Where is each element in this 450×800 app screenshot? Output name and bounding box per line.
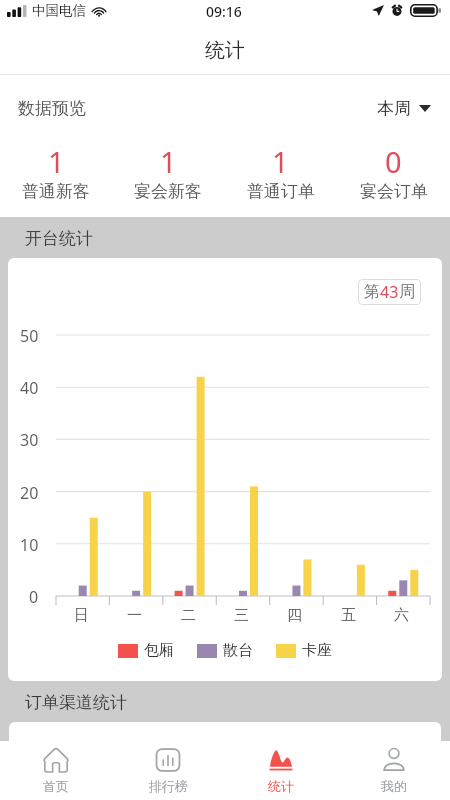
button[interactable]: 1 <box>112 141 224 202</box>
staticText: 第 <box>364 282 380 302</box>
staticText: 卡座 <box>302 641 332 660</box>
staticText: 43 <box>380 281 399 303</box>
staticText: 40 <box>20 377 39 399</box>
staticText: 1 <box>160 142 177 181</box>
button[interactable]: 1 <box>224 141 337 202</box>
staticText: 1 <box>48 142 65 181</box>
button[interactable]: 第 <box>358 279 421 305</box>
staticText: 统计 <box>205 38 245 63</box>
button[interactable]: 我的 <box>337 741 450 798</box>
staticText: 排行榜 <box>149 778 188 794</box>
staticText: 二 <box>181 606 196 625</box>
staticText: 开台统计 <box>25 228 93 249</box>
button[interactable]: 排行榜 <box>112 741 224 798</box>
other: 排行榜 <box>154 746 182 774</box>
staticText: 六 <box>394 606 409 625</box>
staticText: 普通订单 <box>247 181 315 202</box>
other: 我的 <box>380 746 408 774</box>
staticText: 宴会新客 <box>134 181 202 202</box>
staticText: 0 <box>385 142 402 181</box>
staticText: 我的 <box>381 778 407 794</box>
button[interactable]: 统计 <box>224 741 337 798</box>
staticText: 20 <box>20 482 39 504</box>
staticText: 周 <box>399 282 415 302</box>
other: 首页 <box>42 746 70 774</box>
staticText: 日 <box>74 606 89 625</box>
staticText: 五 <box>341 606 356 625</box>
staticText: 本周 <box>377 98 411 119</box>
staticText: 四 <box>287 606 302 625</box>
staticText: 0 <box>29 586 39 608</box>
button[interactable]: 包厢 <box>118 641 174 660</box>
staticText: 50 <box>20 325 39 347</box>
button[interactable]: 散台 <box>197 641 253 660</box>
staticText: 数据预览 <box>18 98 86 119</box>
button[interactable]: 0 <box>337 141 450 202</box>
button[interactable]: 本周 <box>377 98 431 119</box>
staticText: 统计 <box>268 778 294 794</box>
staticText: 散台 <box>223 641 253 660</box>
staticText: 首页 <box>43 778 69 794</box>
staticText: 订单渠道统计 <box>25 692 127 713</box>
staticText: 09:16 <box>206 2 242 21</box>
other: 统计 <box>267 746 295 774</box>
staticText: 普通新客 <box>22 181 90 202</box>
staticText: 中国电信 <box>32 2 86 19</box>
staticText: 宴会订单 <box>360 181 428 202</box>
staticText: 包厢 <box>144 641 174 660</box>
button[interactable]: 卡座 <box>276 641 332 660</box>
staticText: 10 <box>20 534 39 556</box>
staticText: 三 <box>234 606 249 625</box>
button[interactable]: 首页 <box>0 741 112 798</box>
staticText: 30 <box>20 429 39 451</box>
staticText: 一 <box>127 606 142 625</box>
button[interactable]: 1 <box>0 141 112 202</box>
staticText: 1 <box>272 142 289 181</box>
